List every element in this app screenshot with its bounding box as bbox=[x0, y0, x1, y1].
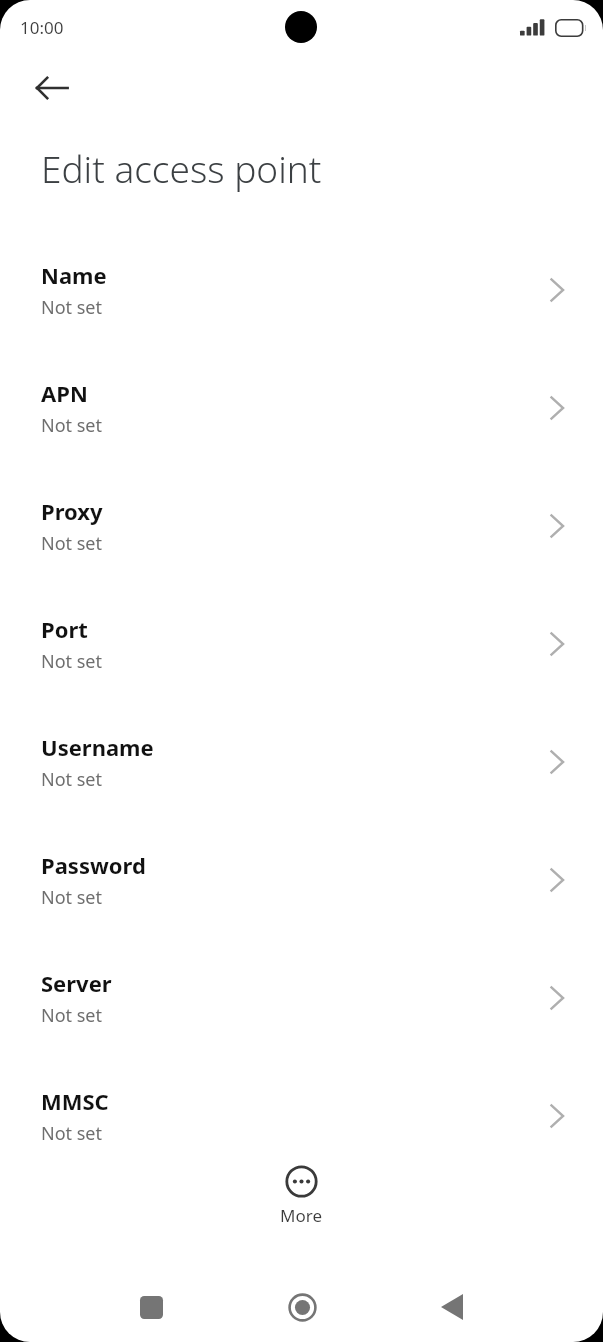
staticText: Not set bbox=[41, 531, 103, 556]
button[interactable]: Username bbox=[0, 718, 603, 836]
staticText: Not set bbox=[41, 295, 103, 320]
staticText: Not set bbox=[41, 885, 103, 910]
button[interactable]: More bbox=[241, 1165, 361, 1247]
staticText: Server bbox=[41, 968, 112, 998]
button[interactable]: Port bbox=[0, 600, 603, 718]
staticText: Name bbox=[41, 260, 107, 290]
staticText: More bbox=[280, 1204, 322, 1227]
staticText: Proxy bbox=[41, 496, 103, 526]
staticText: Not set bbox=[41, 413, 103, 438]
button[interactable]: Home bbox=[271, 1276, 333, 1338]
staticText: APN bbox=[41, 378, 88, 408]
staticText: 10:00 bbox=[20, 16, 64, 39]
button[interactable]: Recent apps bbox=[120, 1276, 182, 1338]
staticText: Password bbox=[41, 850, 146, 880]
staticText: Not set bbox=[41, 649, 103, 674]
button[interactable]: Name bbox=[0, 246, 603, 364]
staticText: Port bbox=[41, 614, 88, 644]
staticText: Not set bbox=[41, 1121, 103, 1146]
staticText: MMSC bbox=[41, 1086, 109, 1116]
button[interactable]: MMSC bbox=[0, 1072, 603, 1190]
button[interactable]: Server bbox=[0, 954, 603, 1072]
button[interactable]: APN bbox=[0, 364, 603, 482]
button[interactable]: Proxy bbox=[0, 482, 603, 600]
button[interactable]: Password bbox=[0, 836, 603, 954]
staticText: Not set bbox=[41, 1003, 103, 1028]
staticText: Not set bbox=[41, 767, 103, 792]
staticText: Username bbox=[41, 732, 154, 762]
staticText: Edit access point bbox=[41, 143, 322, 193]
button[interactable]: Back bbox=[26, 62, 78, 114]
button[interactable]: Back bbox=[421, 1276, 483, 1338]
